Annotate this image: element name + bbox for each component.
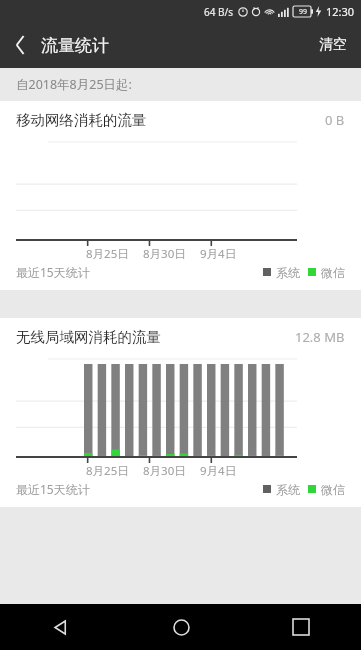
staticText: 8月30日 <box>143 246 186 262</box>
button[interactable]: Home <box>121 604 241 650</box>
staticText: 12:30 <box>326 4 355 19</box>
staticText: 最近15天统计 <box>16 264 90 280</box>
staticText: 8月25日 <box>86 246 129 262</box>
staticText: 8月30日 <box>143 463 186 479</box>
staticText: 流量统计 <box>41 35 109 56</box>
staticText: 99 <box>299 7 308 17</box>
staticText: 最近15天统计 <box>16 481 90 497</box>
staticText: 微信 <box>321 482 345 497</box>
button[interactable]: Recents <box>241 604 361 650</box>
staticText: 系统 <box>276 482 300 497</box>
staticText: 移动网络消耗的流量 <box>16 111 147 129</box>
staticText: 64 B/s <box>204 5 234 19</box>
button[interactable]: 清空 <box>305 22 361 68</box>
button[interactable]: Back <box>0 22 40 68</box>
staticText: 无线局域网消耗的流量 <box>16 328 161 346</box>
button[interactable]: 无线局域网消耗的流量 <box>0 318 361 507</box>
staticText: 系统 <box>276 265 300 280</box>
staticText: 9月4日 <box>200 246 237 262</box>
button[interactable]: Back <box>0 604 121 650</box>
staticText: 9月4日 <box>200 463 237 479</box>
staticText: 自2018年8月25日起: <box>16 76 132 93</box>
staticText: 清空 <box>319 36 347 54</box>
staticText: 12.8 MB <box>295 328 345 346</box>
button[interactable]: 移动网络消耗的流量 <box>0 101 361 290</box>
staticText: 0 B <box>325 111 345 129</box>
staticText: 微信 <box>321 265 345 280</box>
staticText: 8月25日 <box>86 463 129 479</box>
